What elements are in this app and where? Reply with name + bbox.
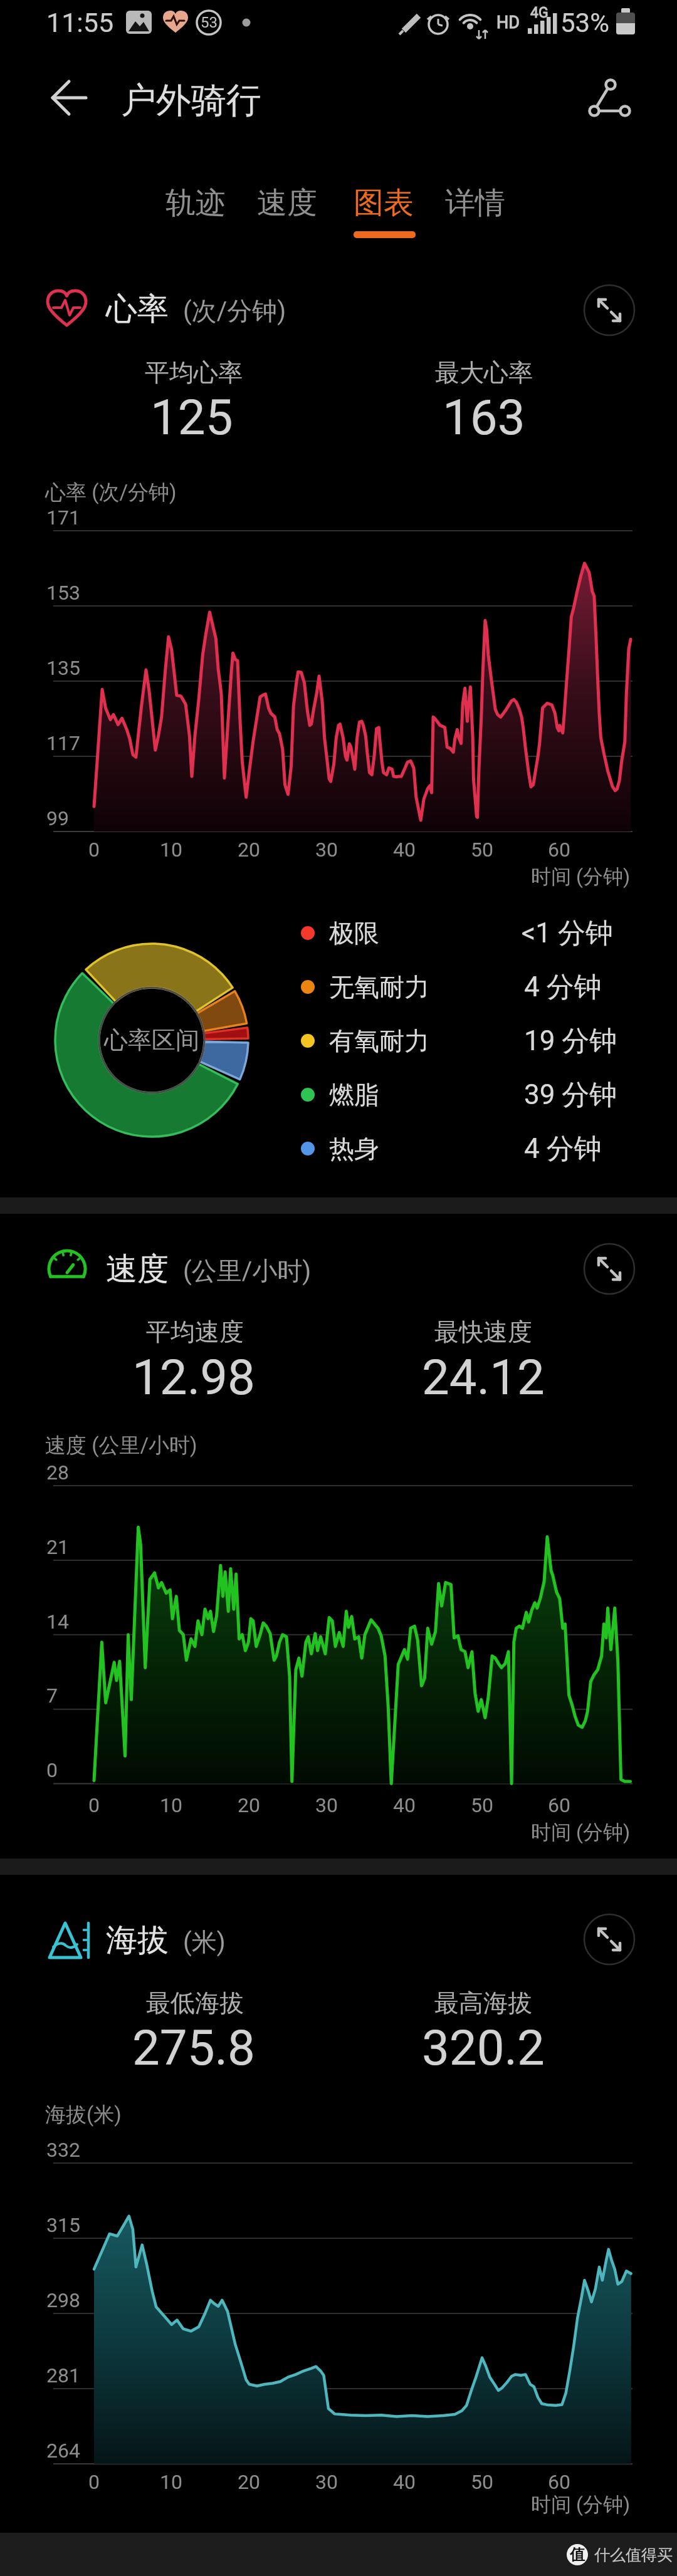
- staticText: HD: [496, 13, 520, 33]
- staticText: 最快速度: [434, 1317, 532, 1347]
- staticText: 心率 (次/分钟): [45, 479, 177, 506]
- staticText: 速度: [106, 1249, 169, 1289]
- staticText: 图表: [354, 184, 414, 222]
- staticText: 171: [46, 506, 80, 529]
- staticText: 19 分钟: [524, 1024, 617, 1058]
- staticText: 时间 (分钟): [531, 1820, 631, 1845]
- staticText: 53: [201, 14, 218, 31]
- staticText: (公里/小时): [183, 1255, 312, 1286]
- staticText: 20: [238, 2470, 260, 2494]
- staticText: 53%: [560, 8, 609, 38]
- staticText: 10: [160, 2470, 182, 2494]
- staticText: 39 分钟: [524, 1078, 617, 1112]
- staticText: 11:55: [46, 7, 114, 38]
- staticText: 320.2: [422, 2020, 545, 2077]
- button[interactable]: [582, 71, 639, 126]
- staticText: 50: [471, 838, 493, 862]
- staticText: 10: [160, 838, 182, 862]
- staticText: 4G: [530, 4, 548, 21]
- staticText: 264: [46, 2439, 80, 2463]
- staticText: 速度 (公里/小时): [45, 1432, 197, 1459]
- staticText: 163: [443, 389, 525, 446]
- staticText: 125: [150, 389, 233, 446]
- button[interactable]: [243, 174, 331, 237]
- staticText: 最低海拔: [146, 1988, 244, 2018]
- staticText: 298: [46, 2288, 80, 2312]
- staticText: 20: [238, 838, 260, 862]
- staticText: 21: [46, 1535, 69, 1559]
- staticText: 30: [315, 838, 338, 862]
- staticText: 30: [315, 1793, 338, 1817]
- staticText: 详情: [445, 184, 505, 222]
- staticText: 户外骑行: [121, 78, 261, 123]
- staticText: 海拔: [106, 1921, 169, 1960]
- staticText: <1 分钟: [522, 916, 614, 951]
- staticText: 心率: [106, 289, 169, 329]
- staticText: 117: [46, 731, 80, 755]
- staticText: 99: [46, 806, 69, 830]
- staticText: 40: [393, 1793, 416, 1817]
- staticText: 10: [160, 1793, 182, 1817]
- staticText: (米): [183, 1926, 226, 1958]
- staticText: 60: [548, 1793, 570, 1817]
- staticText: 7: [46, 1684, 58, 1708]
- staticText: 14: [46, 1610, 69, 1634]
- staticText: 24.12: [422, 1349, 545, 1406]
- staticText: 平均心率: [145, 357, 243, 388]
- button[interactable]: [583, 1913, 636, 1966]
- staticText: 0: [88, 2470, 100, 2494]
- staticText: 燃脂: [329, 1079, 379, 1110]
- staticText: 135: [46, 656, 80, 680]
- staticText: 50: [471, 1793, 493, 1817]
- staticText: 热身: [329, 1133, 379, 1164]
- staticText: 40: [393, 838, 416, 862]
- button[interactable]: [38, 74, 100, 123]
- staticText: 值: [570, 2545, 585, 2564]
- staticText: 4 分钟: [524, 1132, 602, 1166]
- staticText: 平均速度: [146, 1317, 244, 1347]
- staticText: 0: [88, 838, 100, 862]
- staticText: 50: [471, 2470, 493, 2494]
- button[interactable]: [152, 174, 239, 237]
- button[interactable]: [340, 174, 428, 237]
- staticText: 153: [46, 581, 80, 605]
- button[interactable]: [583, 1243, 636, 1295]
- staticText: 4 分钟: [524, 970, 602, 1004]
- staticText: 心率区间: [104, 1025, 199, 1055]
- staticText: (次/分钟): [183, 295, 286, 326]
- staticText: 60: [548, 2470, 570, 2494]
- staticText: 时间 (分钟): [531, 2492, 631, 2517]
- staticText: 30: [315, 2470, 338, 2494]
- staticText: 40: [393, 2470, 416, 2494]
- staticText: 281: [46, 2364, 80, 2387]
- staticText: 时间 (分钟): [531, 864, 631, 889]
- staticText: 什么值得买: [594, 2545, 673, 2565]
- staticText: 28: [46, 1461, 69, 1484]
- staticText: 12.98: [132, 1349, 255, 1406]
- staticText: 最高海拔: [434, 1988, 532, 2018]
- staticText: 极限: [329, 917, 379, 949]
- staticText: 60: [548, 838, 570, 862]
- staticText: 轨迹: [165, 184, 226, 222]
- staticText: 0: [88, 1793, 100, 1817]
- staticText: 332: [46, 2138, 80, 2162]
- staticText: 速度: [257, 184, 317, 222]
- button[interactable]: [431, 174, 519, 237]
- staticText: 无氧耐力: [329, 971, 429, 1003]
- staticText: 0: [46, 1758, 58, 1782]
- staticText: 最大心率: [435, 357, 533, 388]
- staticText: 275.8: [132, 2020, 255, 2077]
- staticText: 有氧耐力: [329, 1025, 429, 1056]
- button[interactable]: [583, 284, 636, 336]
- staticText: 315: [46, 2213, 80, 2237]
- staticText: 海拔(米): [45, 2102, 122, 2128]
- staticText: 20: [238, 1793, 260, 1817]
